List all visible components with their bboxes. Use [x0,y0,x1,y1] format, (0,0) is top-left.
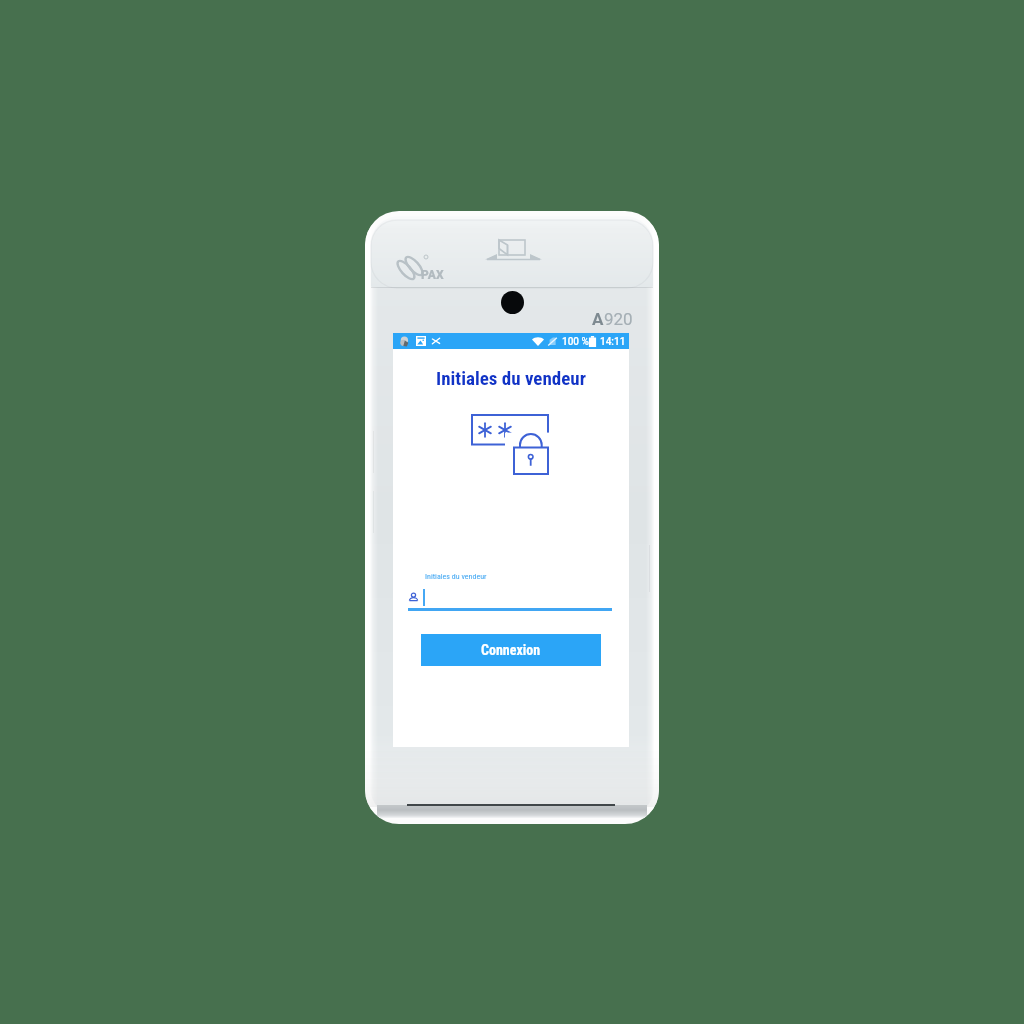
other: App notification [400,336,411,347]
button[interactable]: Connexion [421,634,601,666]
other: Flight mode [432,337,440,345]
other: Screenshot captured [416,336,426,346]
staticText: A [592,309,604,329]
staticText: Initiales du vendeur [393,367,629,389]
other: No SIM card [548,337,557,346]
staticText: Initiales du vendeur [425,572,487,581]
staticText: 100 % [562,336,589,348]
staticText: PAX [421,268,444,282]
button[interactable]: Initiales du vendeur [408,569,612,611]
other: Wi-Fi connected [532,337,544,346]
staticText: 920 [604,309,633,329]
other: Battery full [588,336,597,347]
staticText: 14:11 [600,336,626,348]
staticText: Connexion [481,642,541,658]
